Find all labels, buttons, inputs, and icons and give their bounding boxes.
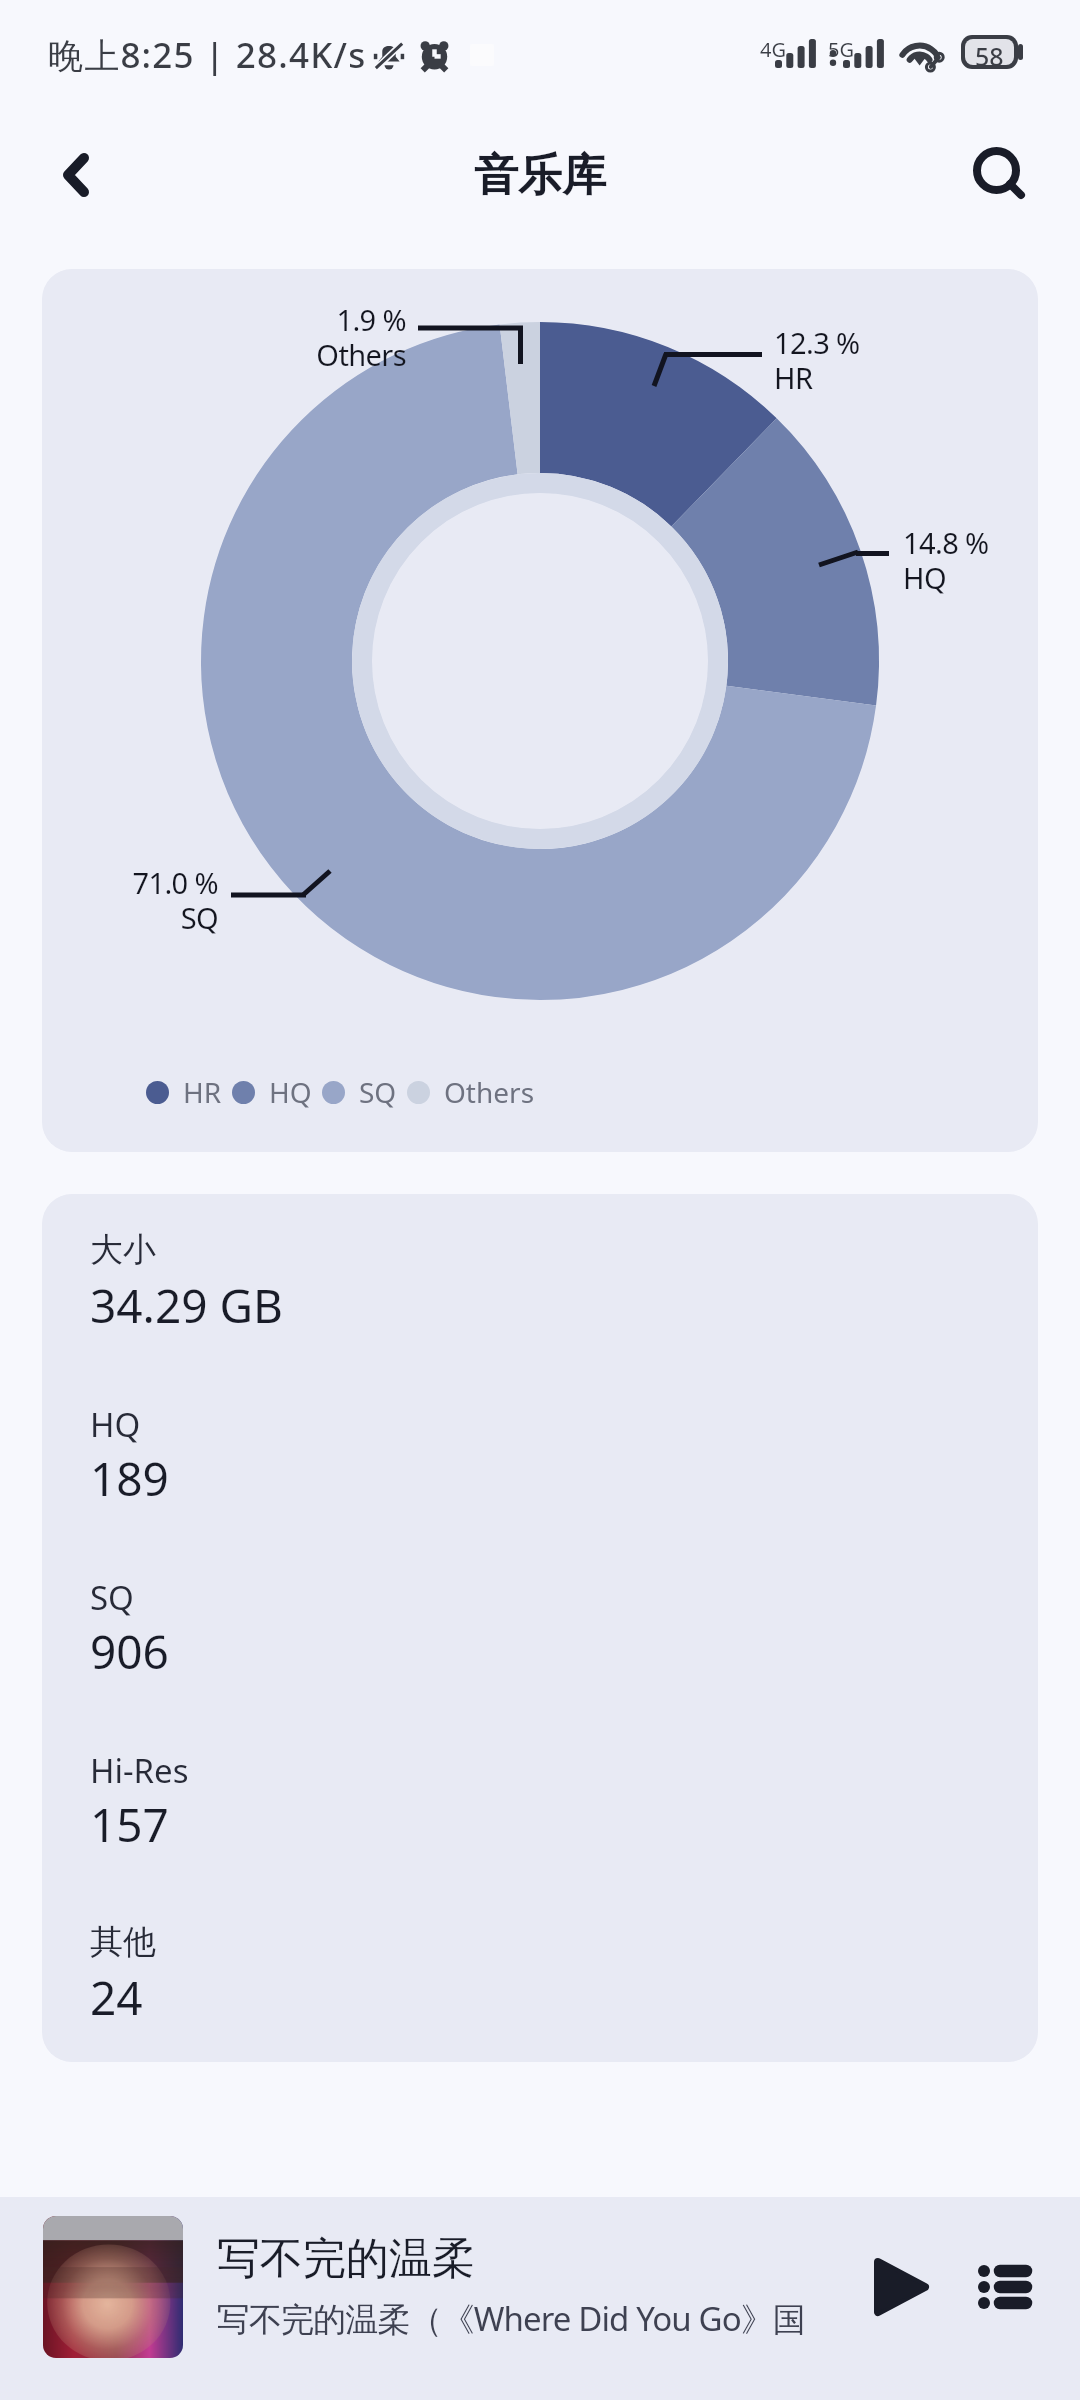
button[interactable]: Album art <box>43 2216 183 2358</box>
staticText: 71.0 % SQ <box>42 863 218 938</box>
staticText: HQ <box>90 1402 141 1447</box>
staticText: 晚上8:25 | 28.4K/s <box>48 31 367 79</box>
staticText: 音乐库 <box>474 148 606 203</box>
button[interactable]: Search <box>951 125 1051 225</box>
button[interactable]: Back <box>26 125 126 225</box>
button[interactable]: Playlist <box>956 2239 1052 2335</box>
staticText: 58 <box>975 39 1004 65</box>
staticText: HR <box>183 1073 222 1111</box>
staticText: 4G <box>760 36 786 63</box>
staticText: 12.3 % HR <box>774 323 974 398</box>
staticText: 24 <box>90 1966 143 2029</box>
staticText: 14.8 % HQ <box>903 523 1038 598</box>
staticText: 906 <box>90 1620 169 1683</box>
staticText: 157 <box>90 1793 169 1856</box>
button[interactable]: 1.9 % Others <box>42 269 1038 1152</box>
staticText: 其他 <box>90 1921 156 1963</box>
staticText: 5G <box>828 36 854 63</box>
staticText: 34.29 GB <box>90 1274 283 1337</box>
staticText: HQ <box>269 1073 312 1111</box>
staticText: 写不完的温柔 <box>217 2232 475 2286</box>
staticText: Others <box>444 1073 535 1111</box>
staticText: 1.9 % Others <box>206 300 406 375</box>
button[interactable]: Play <box>852 2239 948 2335</box>
staticText: 189 <box>90 1447 169 1510</box>
staticText: SQ <box>90 1575 134 1620</box>
staticText: Hi-Res <box>90 1748 189 1793</box>
staticText: 大小 <box>90 1229 156 1271</box>
staticText: SQ <box>359 1073 397 1111</box>
staticText: 写不完的温柔（《Where Did You Go》国 <box>217 2296 805 2341</box>
